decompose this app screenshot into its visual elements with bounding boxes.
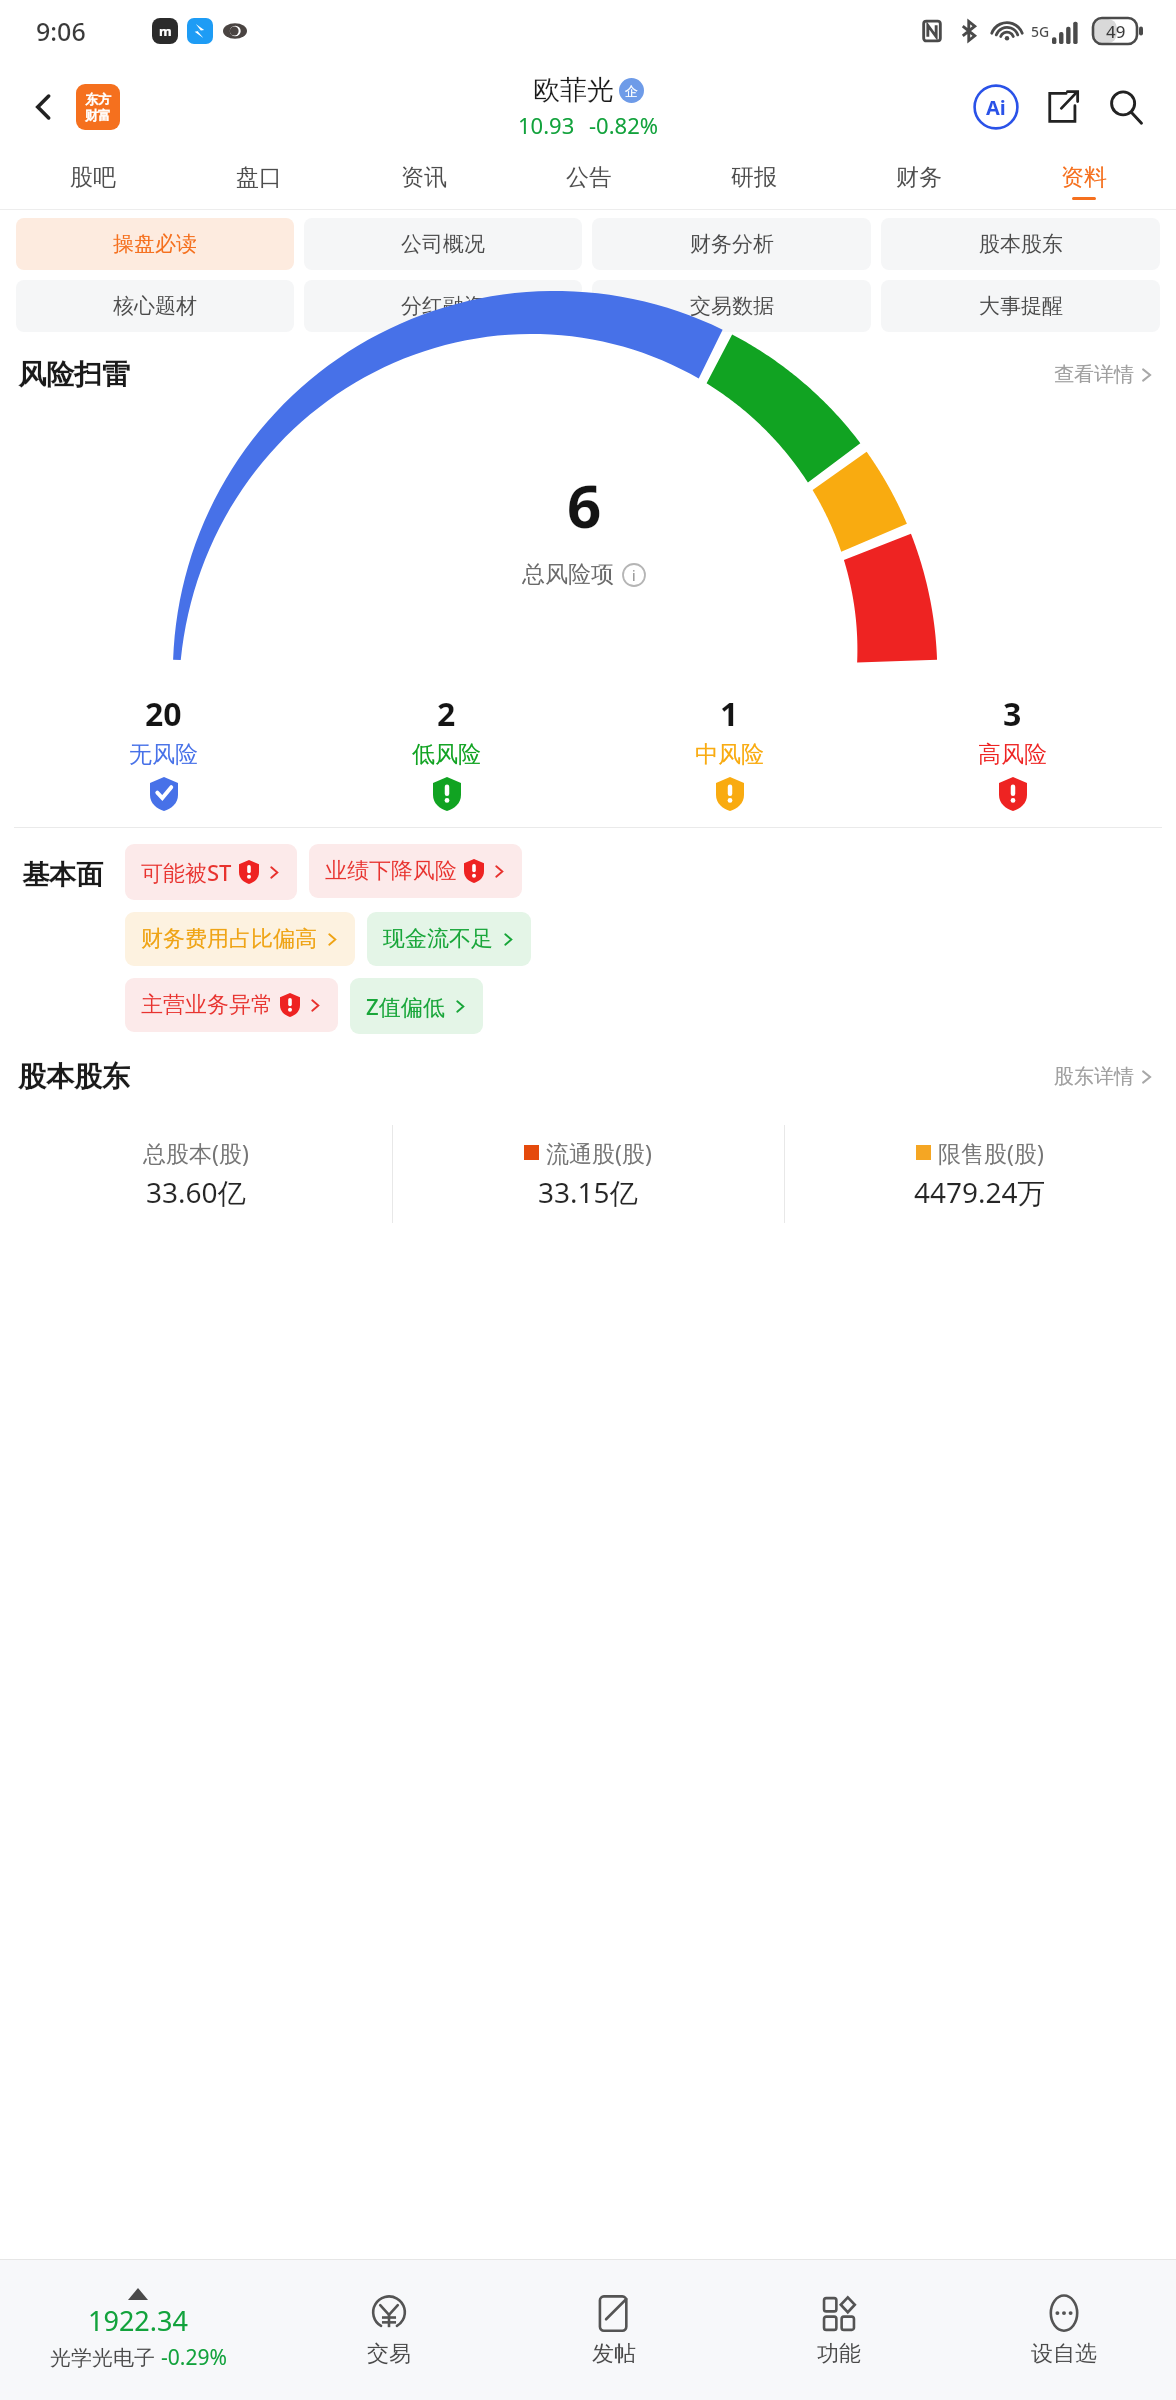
staticText: 现金流不足 xyxy=(383,925,493,953)
staticText: 高风险 xyxy=(978,740,1047,769)
staticText: 发帖 xyxy=(592,2340,636,2368)
staticText: m xyxy=(159,22,172,40)
staticText: 企 xyxy=(625,83,638,99)
staticText: 公告 xyxy=(566,163,612,192)
button[interactable]: 公司概况 xyxy=(304,218,582,270)
staticText: 交易数据 xyxy=(690,293,774,319)
staticText: 核心题材 xyxy=(113,293,197,319)
staticText: 主营业务异常 xyxy=(141,991,273,1019)
staticText: 风险扫雷 xyxy=(18,357,130,392)
button[interactable]: 东方财富 xyxy=(76,84,120,130)
staticText: 3 xyxy=(1003,692,1022,736)
staticText: i xyxy=(632,566,636,585)
button[interactable]: 资讯 xyxy=(341,152,506,210)
staticText: 33.15亿 xyxy=(538,1173,638,1211)
button[interactable]: 财务费用占比偏高 xyxy=(125,912,355,966)
button[interactable]: Search xyxy=(1098,79,1154,135)
staticText: 股东详情 xyxy=(1054,1064,1134,1089)
staticText: 中风险 xyxy=(695,740,764,769)
staticText: 49 xyxy=(1106,20,1126,43)
staticText: 欧菲光 xyxy=(533,73,614,107)
staticText: 低风险 xyxy=(412,740,481,769)
staticText: -0.29% xyxy=(161,2343,227,2372)
staticText: 操盘必读 xyxy=(113,231,197,257)
staticText: 资讯 xyxy=(401,163,447,192)
staticText: 财务分析 xyxy=(690,231,774,257)
staticText: 10.93 xyxy=(518,110,575,140)
staticText: 交易 xyxy=(367,2340,411,2368)
button[interactable]: AI xyxy=(968,79,1024,135)
staticText: 大事提醒 xyxy=(979,293,1063,319)
button[interactable]: 研报 xyxy=(671,152,836,210)
staticText: 9:06 xyxy=(36,14,86,48)
staticText: 可能被ST xyxy=(141,857,232,887)
button[interactable]: Back xyxy=(18,81,70,133)
staticText: 1922.34 xyxy=(88,2302,188,2339)
button[interactable]: 1 xyxy=(588,692,871,811)
button[interactable]: 现金流不足 xyxy=(367,912,531,966)
staticText: 股本股东 xyxy=(18,1059,130,1094)
button[interactable]: 业绩下降风险 xyxy=(309,844,522,898)
staticText: -0.82% xyxy=(589,110,659,140)
staticText: 股吧 xyxy=(70,163,116,192)
staticText: 盘口 xyxy=(236,163,282,192)
staticText: 5G xyxy=(1031,22,1050,41)
button[interactable]: 分红融资 xyxy=(304,280,582,332)
staticText: 4479.24万 xyxy=(914,1173,1046,1211)
staticText: 公司概况 xyxy=(401,231,485,257)
button[interactable]: 2 xyxy=(305,692,588,811)
button[interactable]: 可能被ST xyxy=(125,844,297,900)
button[interactable]: 主营业务异常 xyxy=(125,978,338,1032)
button[interactable]: 操盘必读 xyxy=(16,218,294,270)
button[interactable]: 公告 xyxy=(506,152,671,210)
staticText: 查看详情 xyxy=(1054,362,1134,387)
staticText: 东方 xyxy=(85,91,111,107)
staticText: 总股本(股) xyxy=(143,1137,249,1168)
button[interactable]: 财务 xyxy=(836,152,1001,210)
button[interactable]: 盘口 xyxy=(176,152,341,210)
staticText: 2 xyxy=(437,692,456,736)
button[interactable]: 功能 xyxy=(726,2260,951,2400)
button[interactable]: 财务分析 xyxy=(592,218,871,270)
button[interactable]: 发帖 xyxy=(501,2260,726,2400)
staticText: 总风险项 xyxy=(522,560,614,589)
button[interactable]: 查看详情 xyxy=(1050,358,1158,391)
staticText: 资料 xyxy=(1061,163,1107,192)
staticText: 20 xyxy=(145,692,182,736)
staticText: Ai xyxy=(986,94,1006,121)
staticText: 6 xyxy=(567,464,602,546)
staticText: 财务 xyxy=(896,163,942,192)
button[interactable]: 交易数据 xyxy=(592,280,871,332)
staticText: 业绩下降风险 xyxy=(325,857,457,885)
button[interactable]: 设自选 xyxy=(951,2260,1176,2400)
staticText: Z值偏低 xyxy=(366,991,445,1021)
staticText: 财富 xyxy=(85,107,111,123)
staticText: 设自选 xyxy=(1031,2340,1097,2368)
button[interactable]: 股吧 xyxy=(10,152,176,210)
staticText: 财务费用占比偏高 xyxy=(141,925,317,953)
button[interactable]: 20 xyxy=(22,692,305,811)
staticText: 流通股(股) xyxy=(546,1137,652,1168)
staticText: 股本股东 xyxy=(979,231,1063,257)
button[interactable]: 交易 xyxy=(276,2260,501,2400)
staticText: 限售股(股) xyxy=(938,1137,1044,1168)
staticText: 分红融资 xyxy=(401,293,485,319)
staticText: 1 xyxy=(720,692,739,736)
button[interactable]: 股东详情 xyxy=(1050,1060,1158,1093)
button[interactable]: 大事提醒 xyxy=(881,280,1160,332)
button[interactable]: Z值偏低 xyxy=(350,978,483,1034)
button[interactable]: 资料 xyxy=(1001,152,1166,210)
button[interactable]: 说明 xyxy=(622,563,646,587)
button[interactable]: 核心题材 xyxy=(16,280,294,332)
staticText: 光学光电子 xyxy=(50,2345,155,2371)
button[interactable]: 1922.34 xyxy=(0,2288,276,2372)
staticText: 功能 xyxy=(817,2340,861,2368)
button[interactable]: 股本股东 xyxy=(881,218,1160,270)
staticText: 基本面 xyxy=(22,858,103,892)
staticText: 研报 xyxy=(731,163,777,192)
staticText: 33.60亿 xyxy=(146,1173,246,1211)
button[interactable]: Share xyxy=(1034,79,1090,135)
button[interactable]: 3 xyxy=(871,692,1154,811)
staticText: 无风险 xyxy=(129,740,198,769)
